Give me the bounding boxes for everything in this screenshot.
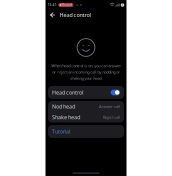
- staticText: Shake head: [52, 114, 80, 121]
- button[interactable]: Shake head: [48, 112, 124, 122]
- staticText: Tutorial: [52, 128, 70, 135]
- staticText: When head control is on, you can answer …: [51, 63, 121, 81]
- staticText: 7: [121, 3, 123, 7]
- staticText: ×: [76, 2, 78, 8]
- staticText: Answer call: [99, 104, 120, 109]
- button[interactable]: Back: [48, 10, 57, 20]
- staticText: Head control: [52, 89, 83, 96]
- staticText: 16:41: [48, 3, 57, 7]
- staticText: Record: [62, 3, 72, 7]
- staticText: Head control: [59, 11, 90, 19]
- button[interactable]: Head control: [45, 86, 126, 99]
- staticText: Nod head: [52, 103, 75, 110]
- button[interactable]: Tutorial: [45, 125, 126, 138]
- button[interactable]: Nod head: [48, 101, 124, 112]
- staticText: Reject call: [103, 114, 120, 120]
